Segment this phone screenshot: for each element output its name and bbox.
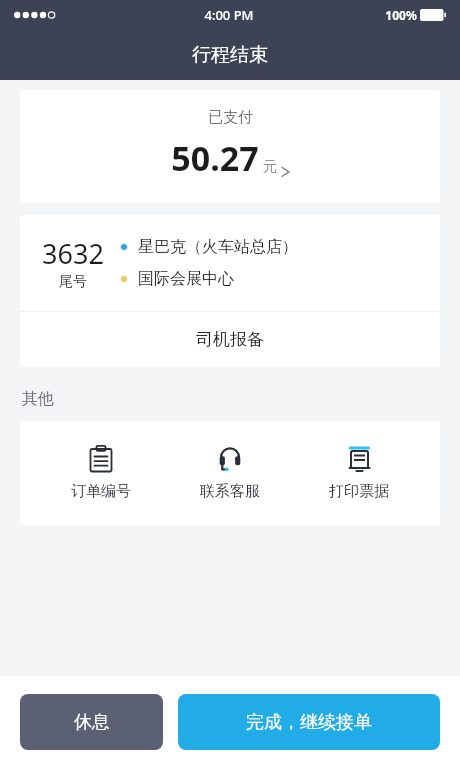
staticText: 50.27 xyxy=(171,135,259,181)
staticText: 联系客服 xyxy=(200,482,260,501)
staticText: 完成，继续接单 xyxy=(246,711,372,734)
staticText: 已支付 xyxy=(208,108,253,127)
staticText: 100% xyxy=(385,7,417,23)
staticText: 尾号 xyxy=(59,273,87,291)
staticText: 国际会展中心 xyxy=(138,269,234,289)
button[interactable]: 打印票据 xyxy=(311,443,407,503)
button[interactable]: 司机报备 xyxy=(20,312,440,367)
staticText: 司机报备 xyxy=(196,329,264,350)
button[interactable]: 联系客服 xyxy=(182,443,278,503)
staticText: 休息 xyxy=(74,711,110,734)
button[interactable]: 已支付 xyxy=(20,90,440,203)
button[interactable]: 订单编号 xyxy=(53,443,149,503)
staticText: 4:00 PM xyxy=(204,6,254,24)
button[interactable]: 3632 xyxy=(20,215,440,311)
staticText: 3632 xyxy=(42,235,104,272)
staticText: 行程结束 xyxy=(192,43,268,67)
staticText: 星巴克（火车站总店） xyxy=(138,237,298,257)
button[interactable]: 完成，继续接单 xyxy=(178,694,440,750)
staticText: 订单编号 xyxy=(71,482,131,501)
staticText: 元 xyxy=(263,158,277,176)
staticText: 打印票据 xyxy=(329,482,389,501)
staticText: 其他 xyxy=(22,389,54,409)
button[interactable]: 休息 xyxy=(20,694,163,750)
